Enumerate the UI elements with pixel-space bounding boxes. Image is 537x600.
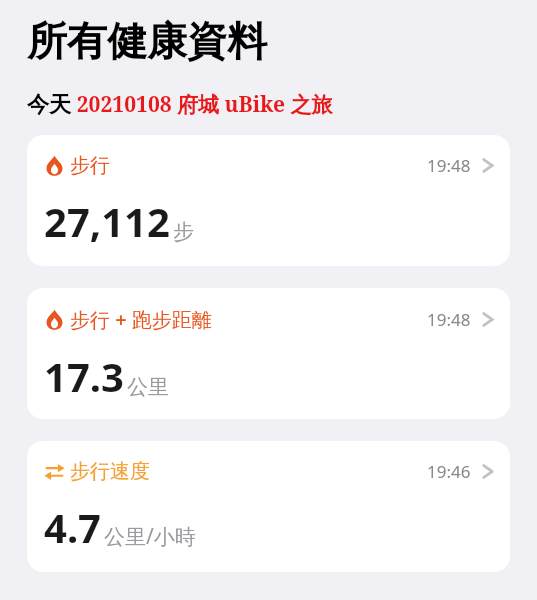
staticText: 步 [173, 219, 194, 245]
other: Open details [482, 461, 494, 482]
staticText: 步行速度 [70, 459, 150, 484]
button[interactable]: Activity [27, 135, 510, 266]
staticText: 17.3 [44, 349, 124, 403]
staticText: 今天 20210108 府城 uBike 之旅 [27, 88, 333, 118]
staticText: 公里 [127, 374, 169, 400]
staticText: 19:46 [427, 460, 471, 483]
staticText: 19:48 [427, 308, 471, 331]
button[interactable]: Walking speed [27, 441, 510, 572]
other: Open details [482, 309, 494, 330]
staticText: 19:48 [427, 154, 471, 177]
other: Activity [44, 155, 65, 176]
staticText: 步行 [70, 153, 110, 178]
other: Activity [44, 309, 65, 330]
staticText: 公里/小時 [104, 522, 196, 551]
staticText: 4.7 [44, 500, 101, 554]
other: Open details [482, 155, 494, 176]
staticText: 27,112 [44, 194, 170, 248]
other: Walking speed [44, 461, 65, 482]
staticText: 步行 + 跑步距離 [70, 306, 212, 333]
button[interactable]: Activity [27, 288, 510, 419]
staticText: 所有健康資料 [27, 16, 267, 66]
